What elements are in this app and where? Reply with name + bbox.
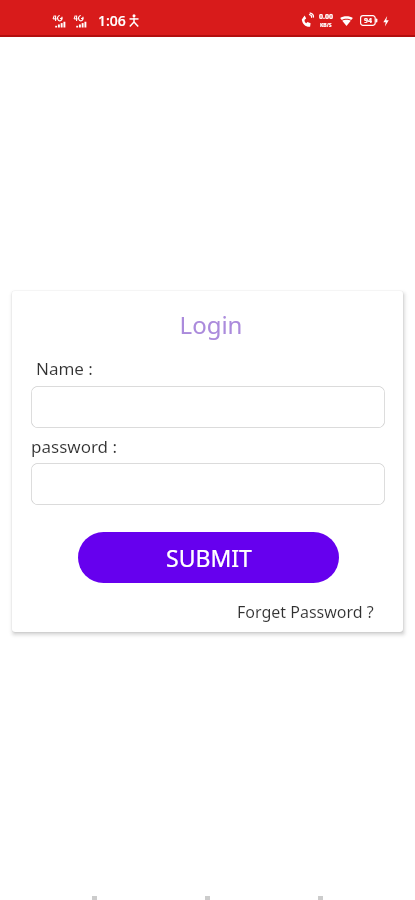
other: Mobile signal 4G	[74, 14, 87, 28]
staticText: 0.00	[319, 12, 333, 22]
staticText: password :	[31, 435, 118, 458]
staticText: 1:06	[98, 11, 126, 30]
staticText: KB/S	[320, 22, 332, 29]
button[interactable]	[31, 463, 385, 505]
other: Call	[301, 14, 314, 27]
other: Location	[129, 14, 139, 27]
staticText: SUBMIT	[166, 542, 252, 573]
other: Charging	[383, 15, 389, 27]
staticText: Name :	[36, 357, 93, 380]
staticText: Login	[34, 308, 388, 341]
button[interactable]: Forget Password ?	[237, 601, 374, 623]
staticText: 94	[364, 16, 373, 26]
other: Wi-Fi	[340, 15, 353, 27]
other: Battery 94 percent	[360, 15, 378, 26]
button[interactable]	[31, 386, 385, 428]
other: Mobile signal 4G	[53, 14, 66, 28]
button[interactable]: SUBMIT	[78, 532, 339, 583]
